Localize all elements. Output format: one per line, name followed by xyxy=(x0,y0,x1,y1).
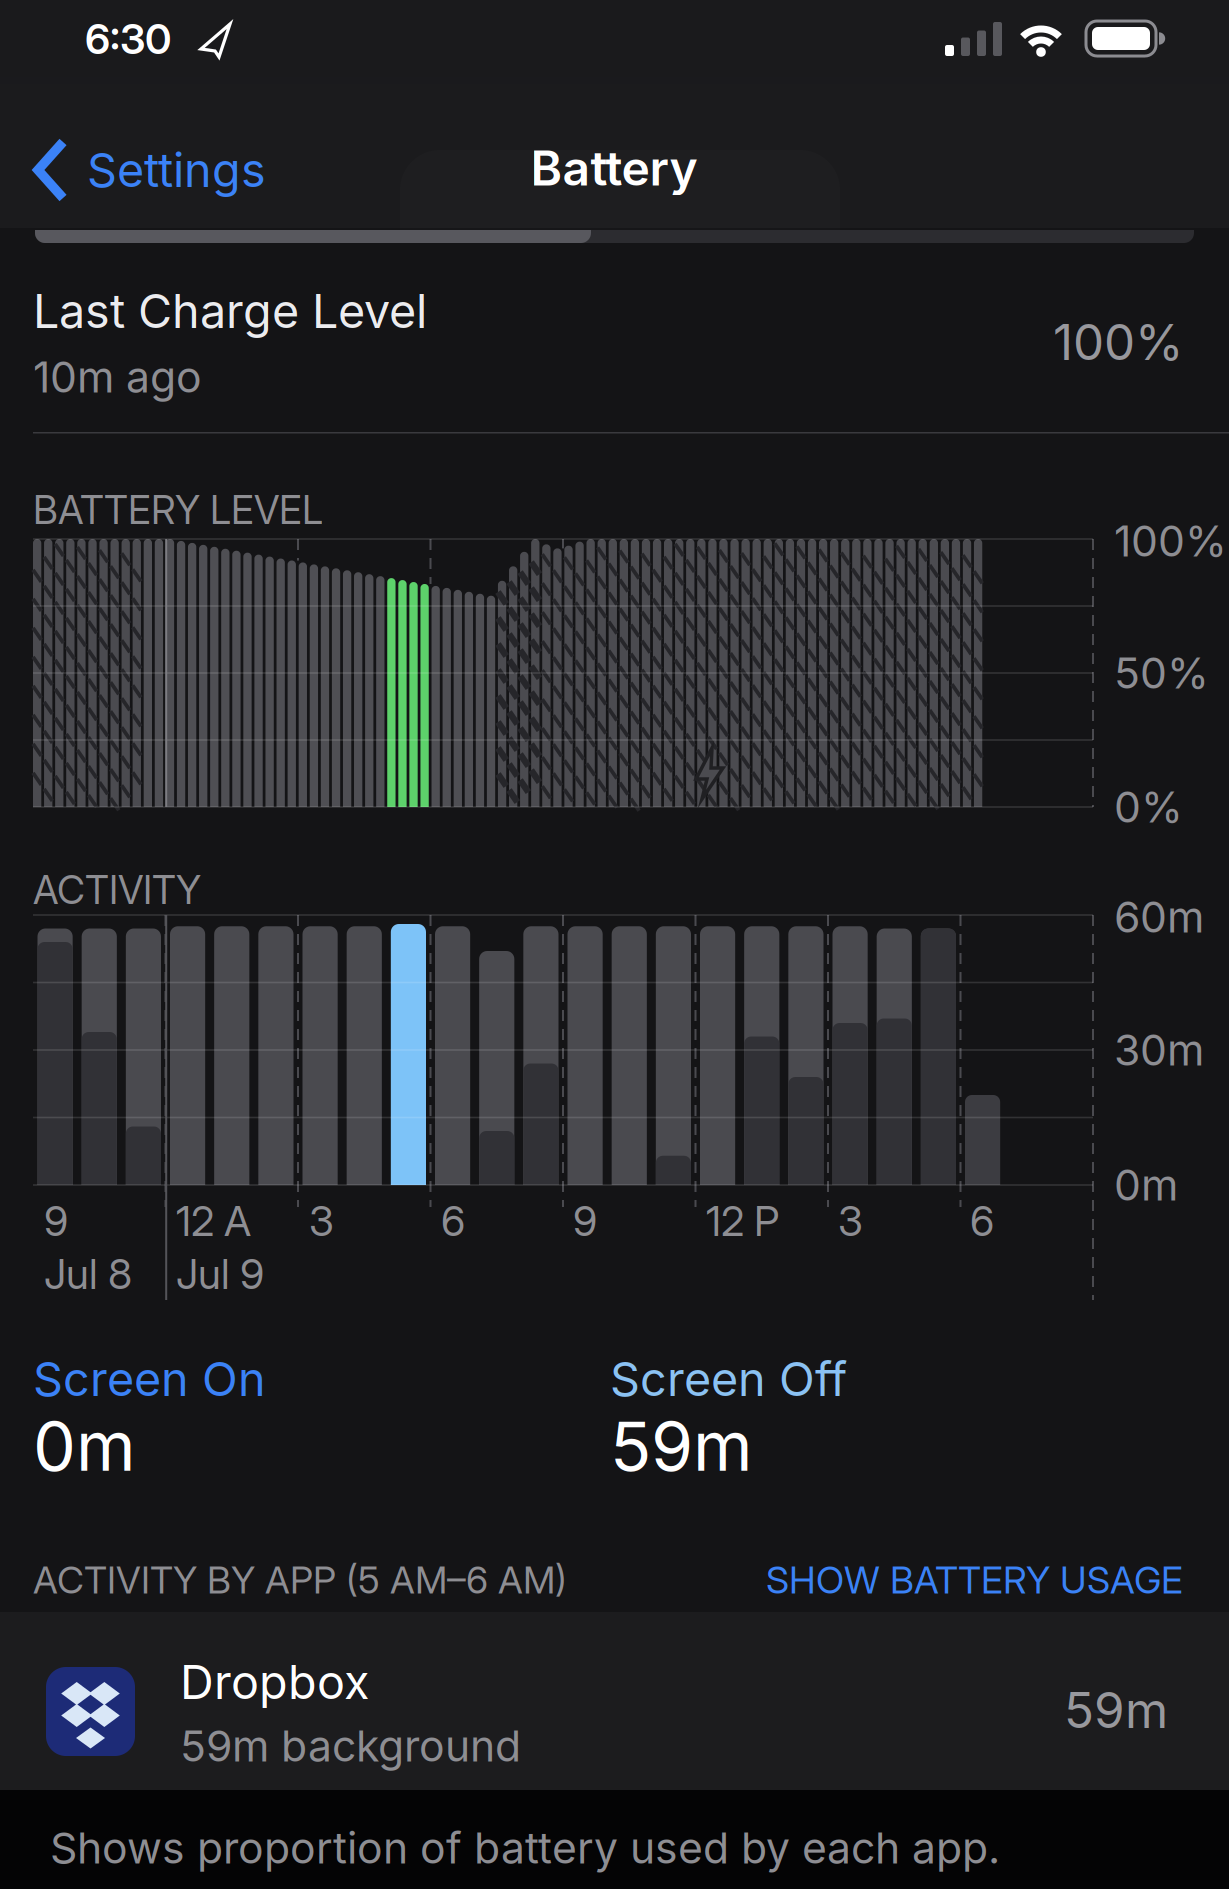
staticText: 50% xyxy=(1114,648,1209,698)
staticText: Screen Off xyxy=(610,1351,847,1407)
staticText: 59m xyxy=(610,1406,753,1486)
staticText: Settings xyxy=(87,142,266,198)
staticText: 0% xyxy=(1114,782,1183,832)
staticText: ACTIVITY xyxy=(33,867,201,913)
staticText: 0m xyxy=(33,1406,136,1486)
staticText: 9 xyxy=(573,1197,597,1245)
staticText: 0m xyxy=(1114,1160,1178,1210)
staticText: 60m xyxy=(1114,892,1204,942)
staticText: 100% xyxy=(1053,313,1183,371)
staticText: 10m ago xyxy=(33,352,202,402)
staticText: 9 xyxy=(44,1197,68,1245)
button[interactable]: Screen On xyxy=(33,1345,573,1485)
button[interactable]: SHOW BATTERY USAGE xyxy=(563,1558,1183,1602)
staticText: Battery xyxy=(530,140,697,196)
staticText: ACTIVITY BY APP (5 AM–6 AM) xyxy=(33,1558,567,1602)
staticText: 6:30 xyxy=(85,15,171,63)
staticText: 3 xyxy=(838,1197,863,1245)
button[interactable]: Dropbox xyxy=(0,1612,1229,1790)
staticText: 30m xyxy=(1114,1025,1204,1075)
staticText: Shows proportion of battery used by each… xyxy=(50,1823,1000,1873)
staticText: 59m xyxy=(1064,1681,1168,1739)
staticText: 6 xyxy=(441,1197,465,1245)
staticText: Screen On xyxy=(33,1351,266,1407)
staticText: BATTERY LEVEL xyxy=(33,487,323,533)
staticText: SHOW BATTERY USAGE xyxy=(766,1558,1183,1602)
staticText: 100% xyxy=(1114,516,1227,566)
staticText: 3 xyxy=(309,1197,334,1245)
staticText: 12 A xyxy=(176,1197,251,1245)
staticText: 12 P xyxy=(706,1197,779,1245)
staticText: 59m background xyxy=(180,1721,521,1771)
staticText: Last Charge Level xyxy=(33,283,427,339)
button[interactable]: Screen Off xyxy=(610,1345,1150,1485)
staticText: Jul 8 xyxy=(44,1250,132,1298)
button[interactable]: Back to Settings xyxy=(30,135,266,205)
button[interactable]: Last 24 Hours xyxy=(0,0,1229,1889)
staticText: Dropbox xyxy=(180,1654,369,1710)
staticText: 6 xyxy=(970,1197,994,1245)
staticText: Jul 9 xyxy=(176,1250,264,1298)
